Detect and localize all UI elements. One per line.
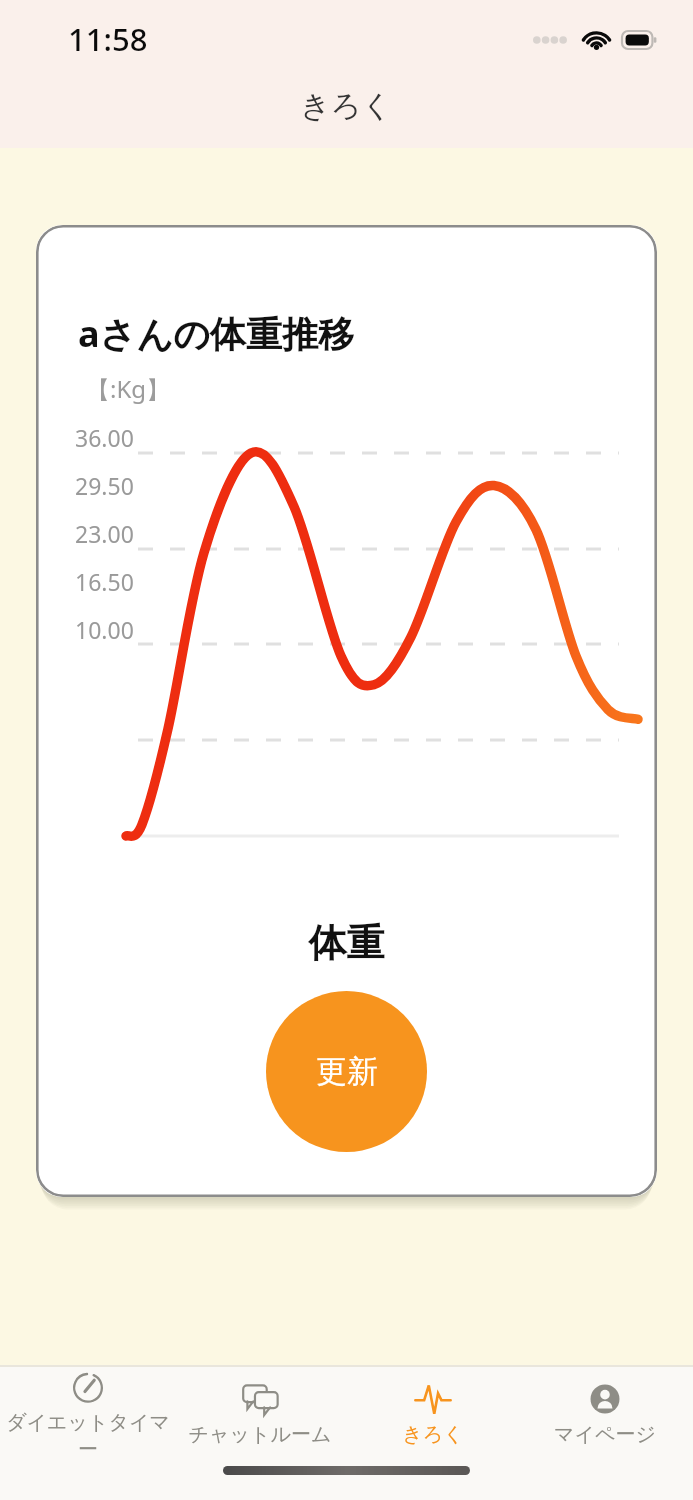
staticText: マイページ — [521, 1422, 689, 1447]
button[interactable]: チャットルーム — [176, 1379, 344, 1447]
staticText: ダイエットタイマー — [4, 1410, 172, 1459]
button[interactable]: マイページ — [521, 1379, 689, 1447]
staticText: きろく — [349, 1422, 517, 1447]
staticText: 【:Kg】 — [86, 372, 171, 405]
staticText: 10.00 — [75, 614, 134, 645]
staticText: 体重 — [36, 919, 657, 967]
staticText: 16.50 — [75, 566, 134, 597]
staticText: aさんの体重推移 — [78, 309, 355, 358]
button[interactable]: ダイエットタイマー — [4, 1367, 172, 1459]
staticText: 23.00 — [75, 518, 134, 549]
staticText: 29.50 — [75, 470, 134, 501]
staticText: チャットルーム — [176, 1422, 344, 1447]
staticText: 更新 — [316, 1052, 378, 1091]
staticText: 36.00 — [75, 422, 134, 453]
button[interactable]: きろく — [349, 1379, 517, 1447]
staticText: 11:58 — [68, 18, 148, 60]
button[interactable]: 更新 — [266, 991, 427, 1152]
staticText: きろく — [300, 87, 393, 125]
